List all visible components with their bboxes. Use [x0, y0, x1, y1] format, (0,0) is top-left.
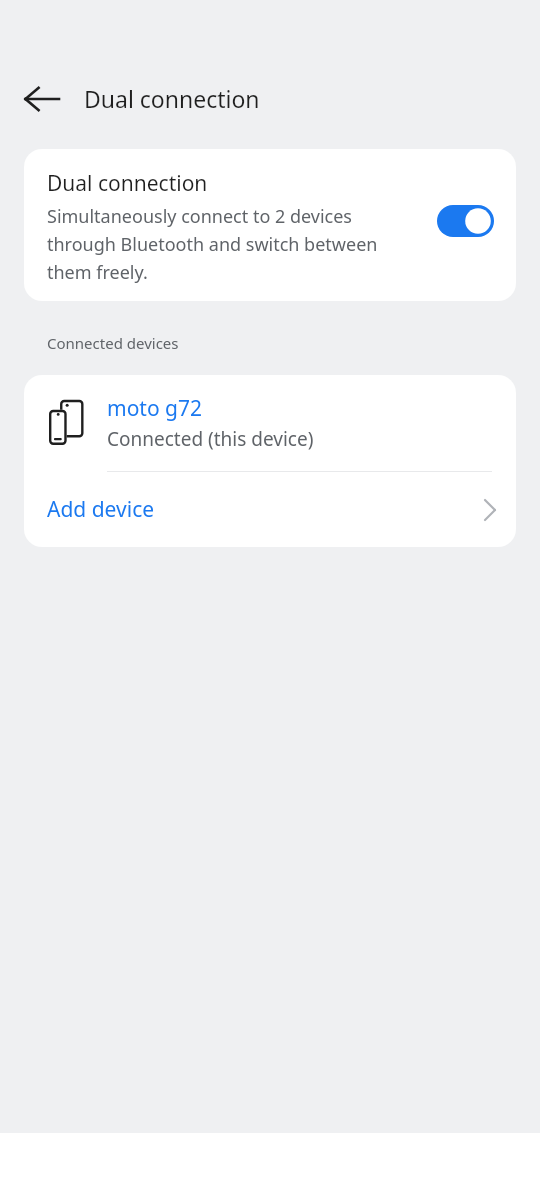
staticText: Dual connection: [84, 83, 260, 114]
button[interactable]: Dual connection: [24, 149, 516, 301]
button[interactable]: Back: [14, 77, 70, 121]
staticText: Connected devices: [47, 333, 179, 353]
staticText: Connected (this device): [107, 426, 314, 452]
staticText: Simultaneously connect to 2 devices thro…: [47, 204, 407, 284]
button[interactable]: Add device: [24, 472, 516, 547]
staticText: moto g72: [107, 394, 203, 423]
button[interactable]: moto g72: [24, 375, 516, 471]
button[interactable]: Dual connection toggle: [428, 197, 502, 245]
staticText: Add device: [47, 495, 155, 524]
staticText: Dual connection: [47, 169, 208, 198]
